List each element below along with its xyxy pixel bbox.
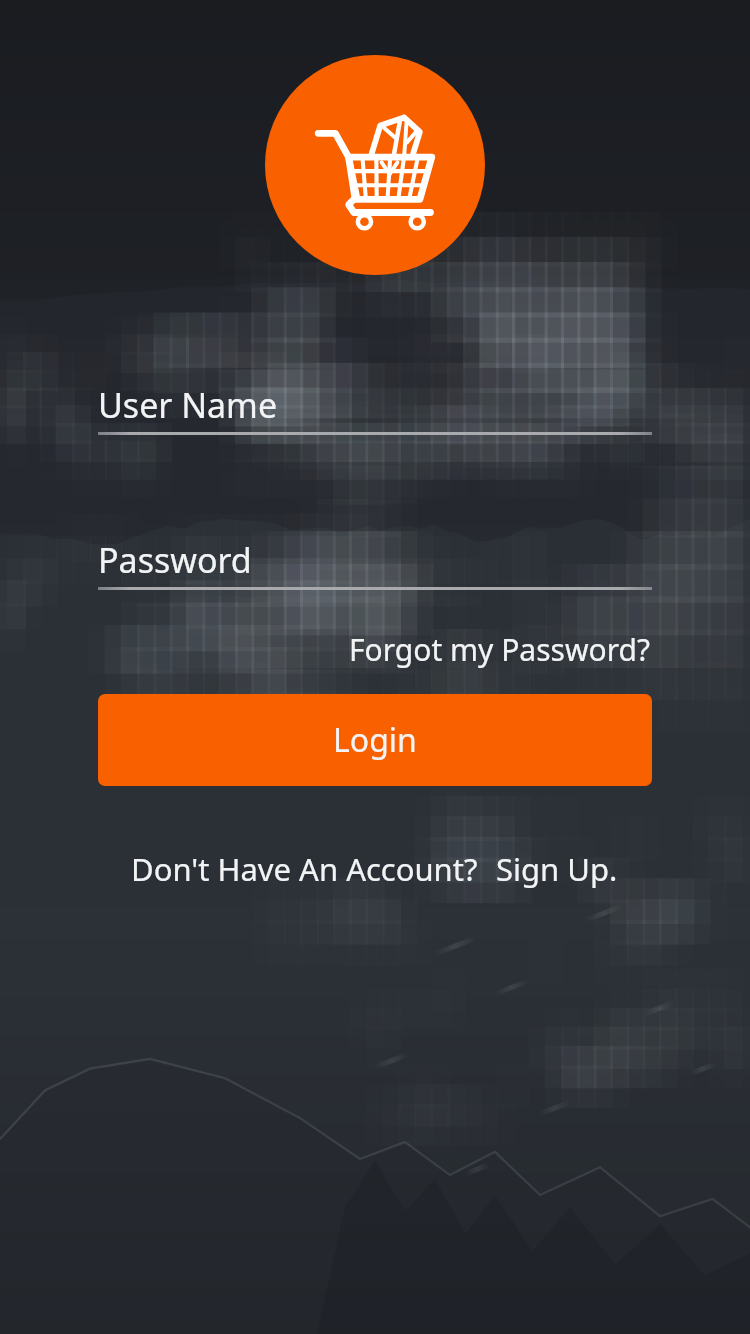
- button[interactable]: Password: [98, 525, 652, 605]
- staticText: Password: [98, 537, 252, 583]
- staticText: Don't Have An Account?: [131, 848, 478, 890]
- button[interactable]: User Name: [98, 370, 652, 450]
- button[interactable]: Forgot my Password?: [347, 623, 652, 676]
- staticText: Login: [333, 718, 417, 762]
- button[interactable]: Login: [98, 694, 652, 786]
- other: App logo: shopping cart: [265, 55, 485, 275]
- staticText: User Name: [98, 382, 278, 428]
- button[interactable]: Sign Up.: [494, 844, 620, 894]
